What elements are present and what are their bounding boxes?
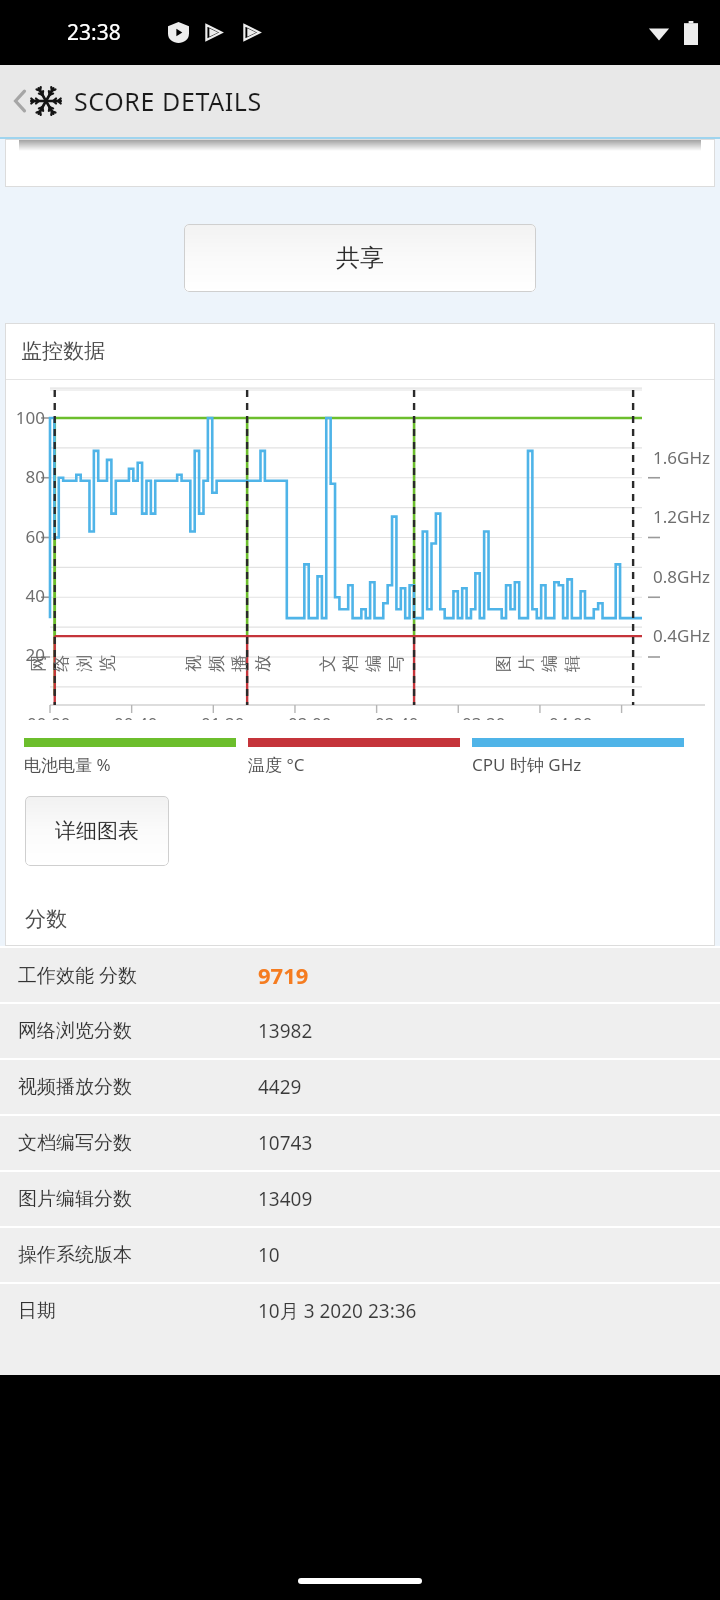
button[interactable]: 详细图表: [25, 796, 169, 866]
staticText: 10: [258, 1242, 280, 1268]
staticText: 文档编写: [317, 650, 407, 672]
staticText: 13409: [258, 1186, 313, 1212]
staticText: 1.2GHz: [653, 505, 710, 528]
staticText: 10月 3 2020 23:36: [258, 1298, 417, 1324]
staticText: 02:40: [375, 712, 419, 735]
staticText: 00:40: [114, 712, 158, 735]
staticText: 0.8GHz: [653, 565, 710, 588]
staticText: 详细图表: [55, 818, 139, 844]
staticText: 文档编写分数: [18, 1131, 258, 1155]
staticText: 4429: [258, 1074, 302, 1100]
staticText: 操作系统版本: [18, 1243, 258, 1267]
staticText: 1.6GHz: [653, 446, 710, 469]
staticText: 0.4GHz: [653, 624, 710, 647]
button[interactable]: Back: [8, 84, 266, 118]
staticText: 图片编辑分数: [18, 1187, 258, 1211]
staticText: 02:00: [288, 712, 332, 735]
staticText: 共享: [336, 243, 384, 273]
staticText: 分数: [25, 906, 67, 932]
button[interactable]: 文档编写分数: [0, 1116, 720, 1170]
button[interactable]: 工作效能 分数: [0, 948, 720, 1002]
staticText: 01:20: [201, 712, 245, 735]
staticText: 10743: [258, 1130, 313, 1156]
staticText: 网络浏览: [28, 650, 118, 672]
staticText: 23:38: [67, 18, 121, 47]
staticText: 00:00: [27, 712, 71, 735]
staticText: 网络浏览分数: [18, 1019, 258, 1043]
staticText: 电池电量 %: [24, 753, 111, 776]
staticText: SCORE DETAILS: [74, 84, 262, 118]
staticText: CPU 时钟 GHz: [472, 753, 582, 776]
staticText: 监控数据: [21, 338, 105, 364]
button[interactable]: 视频播放分数: [0, 1060, 720, 1114]
staticText: 13982: [258, 1018, 313, 1044]
staticText: 100: [11, 406, 45, 429]
staticText: 工作效能 分数: [18, 962, 258, 988]
staticText: 视频播放: [183, 650, 273, 672]
staticText: 03:20: [462, 712, 506, 735]
staticText: 04:00: [549, 712, 593, 735]
button[interactable]: 操作系统版本: [0, 1228, 720, 1282]
button[interactable]: 网络浏览分数: [0, 1004, 720, 1058]
button[interactable]: 共享: [184, 224, 536, 292]
staticText: 60: [11, 525, 45, 548]
button[interactable]: 图片编辑分数: [0, 1172, 720, 1226]
staticText: 日期: [18, 1299, 258, 1323]
staticText: 40: [11, 584, 45, 607]
staticText: 20: [11, 643, 45, 666]
staticText: 图片编辑: [493, 650, 583, 672]
staticText: 9719: [258, 960, 309, 990]
button[interactable]: 日期: [0, 1284, 720, 1338]
staticText: 视频播放分数: [18, 1075, 258, 1099]
staticText: 80: [11, 465, 45, 488]
staticText: 温度 °C: [248, 753, 305, 776]
